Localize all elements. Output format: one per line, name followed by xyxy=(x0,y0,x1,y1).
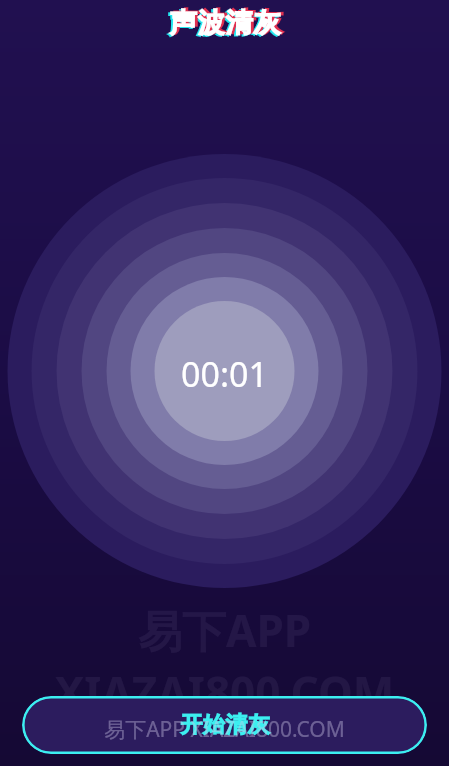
staticText: 声波清灰 xyxy=(167,7,279,41)
staticText: 易下APP XIAZAI800.COM xyxy=(0,600,449,722)
staticText: 开始清灰 xyxy=(180,711,270,739)
button[interactable]: 开始清灰 xyxy=(22,696,427,754)
staticText: 00:01 xyxy=(0,351,449,397)
staticText: 声波清灰 xyxy=(169,6,281,40)
staticText: 声波清灰 xyxy=(172,5,284,39)
staticText: 易下APP XIAZAI800.COM xyxy=(0,715,449,744)
